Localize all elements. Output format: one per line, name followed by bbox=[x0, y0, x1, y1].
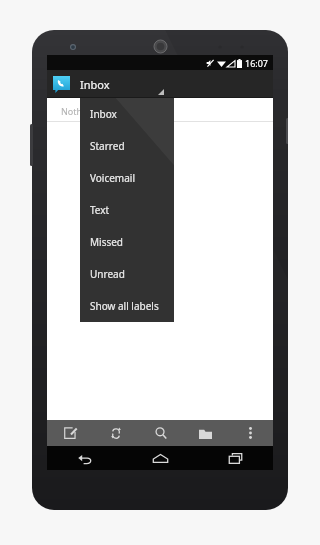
button[interactable]: Show all labels bbox=[80, 290, 174, 322]
button[interactable]: Recent apps bbox=[198, 446, 273, 470]
button[interactable]: Back bbox=[47, 446, 123, 470]
staticText: Inbox bbox=[80, 77, 110, 92]
button[interactable]: Compose bbox=[47, 420, 93, 446]
button[interactable]: Starred bbox=[80, 130, 174, 162]
button[interactable]: Missed bbox=[80, 226, 174, 258]
button[interactable]: Unread bbox=[80, 258, 174, 290]
staticText: Text bbox=[90, 203, 110, 217]
staticText: Unread bbox=[90, 267, 125, 281]
button[interactable]: More options bbox=[228, 420, 273, 446]
button[interactable]: Text bbox=[80, 194, 174, 226]
staticText: Inbox bbox=[90, 107, 117, 121]
staticText: Starred bbox=[90, 139, 125, 153]
button[interactable]: Voicemail bbox=[80, 162, 174, 194]
button[interactable]: Inbox bbox=[47, 70, 110, 98]
button[interactable]: Refresh bbox=[93, 420, 138, 446]
staticText: Show all labels bbox=[90, 299, 159, 313]
staticText: Voicemail bbox=[90, 171, 135, 185]
button[interactable]: Inbox bbox=[80, 98, 174, 130]
button[interactable]: Home bbox=[123, 446, 198, 470]
staticText: Missed bbox=[90, 235, 124, 249]
button[interactable]: Search bbox=[138, 420, 183, 446]
button[interactable]: Folders bbox=[183, 420, 228, 446]
staticText: 16:07 bbox=[245, 57, 269, 69]
staticText: Nothing in this view bbox=[61, 105, 145, 117]
